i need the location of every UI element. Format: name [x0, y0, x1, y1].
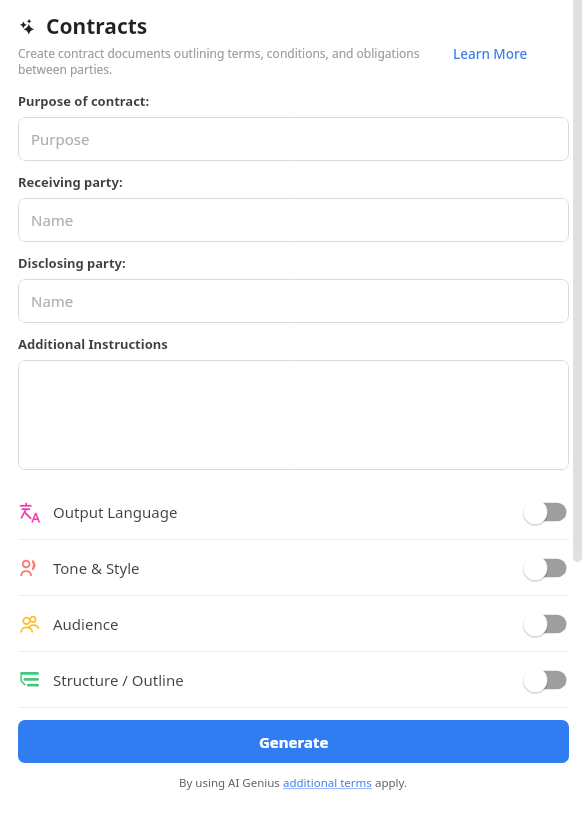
button[interactable] [18, 360, 569, 470]
staticText: Additional Instructions [18, 335, 168, 353]
button[interactable]: Structure / Outline [0, 652, 587, 707]
staticText: Purpose of contract: [18, 92, 150, 110]
staticText: Contracts [46, 12, 148, 41]
button[interactable]: Toggle option [527, 611, 569, 637]
staticText: Audience [53, 614, 119, 634]
staticText: Structure / Outline [53, 670, 184, 690]
staticText: Create contract documents outlining term… [18, 45, 443, 78]
button[interactable]: Toggle option [527, 555, 569, 581]
button[interactable]: additional terms [283, 775, 372, 791]
staticText: Output Language [53, 502, 178, 522]
staticText: Generate [259, 732, 329, 752]
button[interactable]: Output Language [0, 484, 587, 539]
button[interactable]: Name [18, 198, 569, 242]
button[interactable]: Generate [18, 720, 569, 763]
staticText: Disclosing party: [18, 254, 126, 272]
staticText: Learn More [453, 45, 528, 63]
staticText: Name [31, 291, 74, 311]
staticText: Receiving party: [18, 173, 123, 191]
staticText: By using AI Genius [179, 775, 283, 791]
button[interactable]: Toggle option [527, 499, 569, 525]
button[interactable]: Name [18, 279, 569, 323]
button[interactable]: Audience [0, 596, 587, 651]
button[interactable]: Toggle option [527, 667, 569, 693]
button[interactable]: Learn More [453, 45, 528, 63]
button[interactable]: Purpose [18, 117, 569, 161]
staticText: additional terms [283, 775, 372, 791]
staticText: Purpose [31, 129, 90, 149]
staticText: apply. [372, 775, 408, 791]
staticText: Tone & Style [53, 558, 140, 578]
staticText: Name [31, 210, 74, 230]
button[interactable]: Tone & Style [0, 540, 587, 595]
